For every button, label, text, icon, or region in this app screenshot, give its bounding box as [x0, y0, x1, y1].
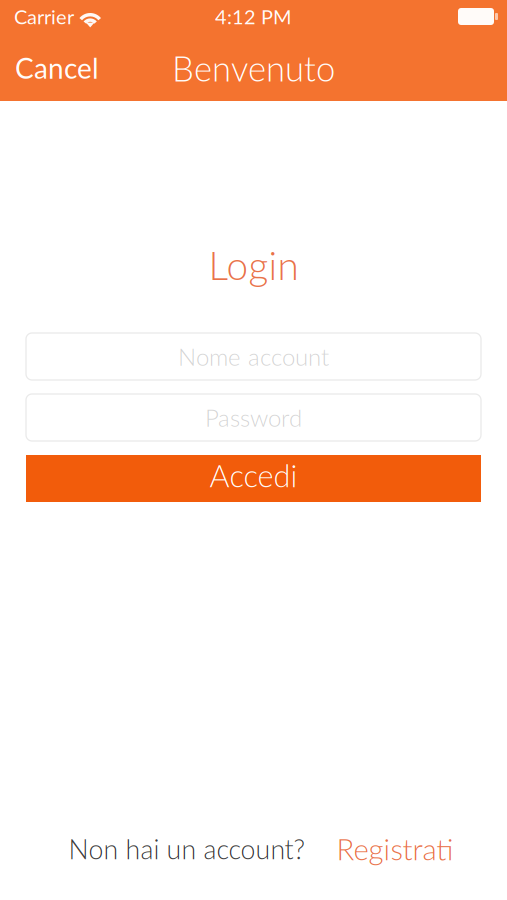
staticText: Login — [208, 242, 298, 288]
staticText: Registrati — [336, 831, 453, 867]
staticText: Cancel — [15, 51, 99, 85]
staticText: Non hai un account? — [68, 833, 305, 865]
staticText: Nome account — [178, 342, 329, 371]
button[interactable]: Cancel — [0, 33, 113, 103]
button[interactable]: Registrati — [336, 831, 453, 867]
staticText: Password — [205, 403, 302, 432]
staticText: Benvenuto — [172, 47, 335, 89]
staticText: 4:12 PM — [215, 4, 292, 28]
staticText: Accedi — [209, 457, 297, 494]
button[interactable]: Accedi — [26, 455, 481, 502]
staticText: Carrier — [14, 4, 74, 28]
